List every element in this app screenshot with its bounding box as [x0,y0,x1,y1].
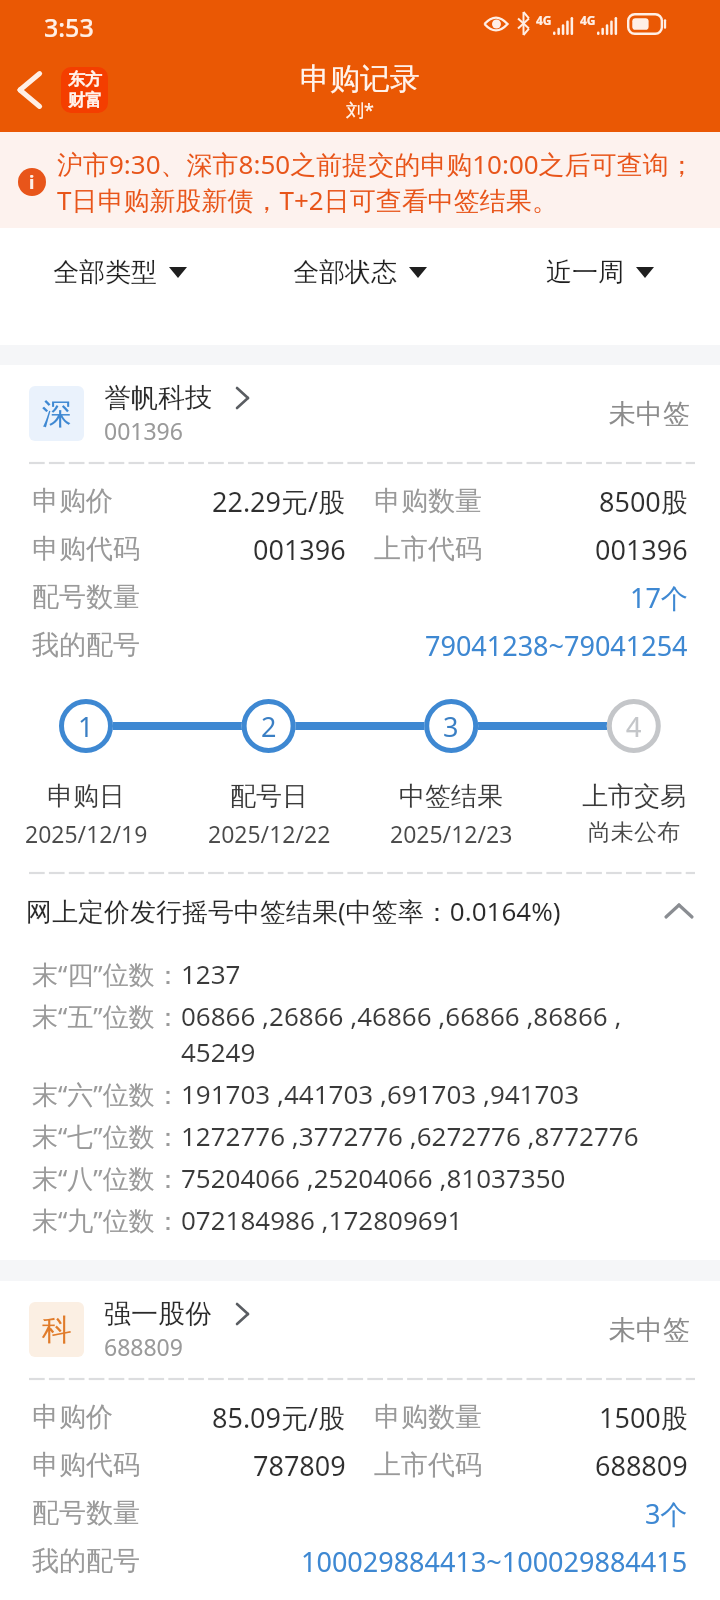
button[interactable]: 近一周 [480,228,720,317]
staticText: 688809 [595,1447,688,1484]
staticText: 科 [42,1311,72,1349]
staticText: 未中签 [609,1313,690,1347]
staticText: 申购数量 [374,484,482,518]
staticText: 配号数量 [32,1496,140,1530]
other: Collapse [664,903,694,919]
staticText: 787809 [253,1447,346,1484]
staticText: 191703 ,441703 ,691703 ,941703 [181,1076,580,1111]
button[interactable]: Back [4,63,58,117]
staticText: 22.29元/股 [212,483,346,520]
staticText: 申购价 [32,484,113,518]
staticText: 深 [42,395,72,433]
staticText: 未中签 [609,397,690,431]
staticText: 4 [626,708,642,745]
staticText: 申购日 [47,780,125,813]
staticText: 3个 [645,1495,688,1532]
staticText: 上市代码 [374,532,482,566]
staticText: 末“七”位数： [32,1118,181,1154]
staticText: 17个 [630,579,688,616]
staticText: 8500股 [599,483,688,520]
staticText: 3:53 [44,10,94,44]
staticText: 上市代码 [374,1448,482,1482]
staticText: 近一周 [546,256,624,289]
staticText: 全部类型 [53,256,157,289]
staticText: 06866 ,26866 ,46866 ,66866 ,86866 , 4524… [181,998,622,1070]
staticText: 末“八”位数： [32,1160,181,1196]
staticText: 79041238~79041254 [425,627,688,664]
staticText: T日申购新股新债，T+2日可查看中签结果。 [57,182,558,218]
staticText: 85.09元/股 [212,1399,346,1436]
button[interactable]: 深 [0,365,720,462]
staticText: i [29,170,35,195]
staticText: 001396 [595,531,688,568]
staticText: 配号数量 [32,580,140,614]
staticText: 刘* [346,98,374,123]
staticText: 誉帆科技 [104,381,212,415]
staticText: 001396 [253,531,346,568]
staticText: 我的配号 [32,1544,140,1578]
button[interactable]: East Money logo [61,67,108,113]
staticText: 申购代码 [32,532,140,566]
staticText: 2025/12/22 [208,818,331,849]
staticText: 688809 [104,1331,183,1362]
staticText: 2 [261,708,277,745]
button[interactable]: 科 [0,1281,720,1378]
staticText: 强一股份 [104,1297,212,1331]
staticText: 末“四”位数： [32,956,181,992]
staticText: 1 [78,708,94,745]
staticText: 4G [580,12,596,28]
staticText: 我的配号 [32,628,140,662]
staticText: 申购数量 [374,1400,482,1434]
staticText: 4G [536,12,552,28]
staticText: 沪市9:30、深市8:50之前提交的申购10:00之后可查询； [57,146,695,182]
staticText: 财富 [68,90,102,111]
staticText: 072184986 ,172809691 [181,1202,463,1237]
button[interactable]: 网上定价发行摇号中签结果(中签率：0.0164%) [0,874,720,948]
staticText: 2025/12/23 [390,818,513,849]
staticText: 东方 [68,69,102,90]
staticText: 网上定价发行摇号中签结果(中签率：0.0164%) [26,893,561,929]
staticText: 全部状态 [293,256,397,289]
staticText: 1500股 [599,1399,688,1436]
staticText: 001396 [104,415,183,446]
button[interactable]: 全部状态 [240,228,480,317]
staticText: 2025/12/19 [25,818,148,849]
staticText: 75204066 ,25204066 ,81037350 [181,1160,566,1195]
staticText: 1237 [181,956,241,991]
staticText: 配号日 [230,780,308,813]
staticText: 末“六”位数： [32,1076,181,1112]
staticText: 上市交易 [582,780,686,813]
staticText: 中签结果 [399,780,503,813]
staticText: 申购代码 [32,1448,140,1482]
staticText: 尚未公布 [588,818,680,847]
staticText: 末“九”位数： [32,1202,181,1238]
staticText: 3 [443,708,459,745]
button[interactable]: 全部类型 [0,228,240,317]
staticText: 申购价 [32,1400,113,1434]
staticText: 末“五”位数： [32,998,181,1034]
staticText: 100029884413~100029884415 [301,1543,688,1580]
staticText: 1272776 ,3772776 ,6272776 ,8772776 [181,1118,639,1153]
staticText: 申购记录 [300,60,420,98]
